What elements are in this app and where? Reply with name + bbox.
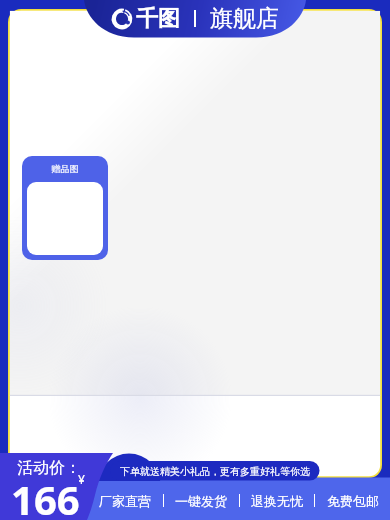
staticText: 活动价： xyxy=(17,458,81,478)
staticText: 厂家直营 xyxy=(99,493,151,509)
button[interactable]: 赠品图 xyxy=(22,156,108,260)
staticText: 免费包邮 xyxy=(327,493,379,509)
staticText: 赠品图 xyxy=(22,163,108,174)
staticText: 下单就送精美小礼品，更有多重好礼等你选 xyxy=(120,465,310,478)
staticText: 一键发货 xyxy=(175,493,227,509)
button[interactable]: 免费包邮 xyxy=(327,481,379,520)
button[interactable]: 退换无忧 xyxy=(251,481,303,520)
other: 千图 logo xyxy=(111,8,133,30)
staticText: ¥ xyxy=(78,471,85,487)
button[interactable]: 厂家直营 xyxy=(99,481,151,520)
button[interactable]: 千图 logo xyxy=(111,4,279,33)
staticText: 千图 xyxy=(136,5,180,33)
staticText: 旗舰店 xyxy=(210,4,279,33)
button[interactable]: 一键发货 xyxy=(175,481,227,520)
staticText: 166 xyxy=(11,472,80,520)
button[interactable]: 下单就送精美小礼品，更有多重好礼等你选 xyxy=(110,461,320,481)
staticText: 退换无忧 xyxy=(251,493,303,509)
